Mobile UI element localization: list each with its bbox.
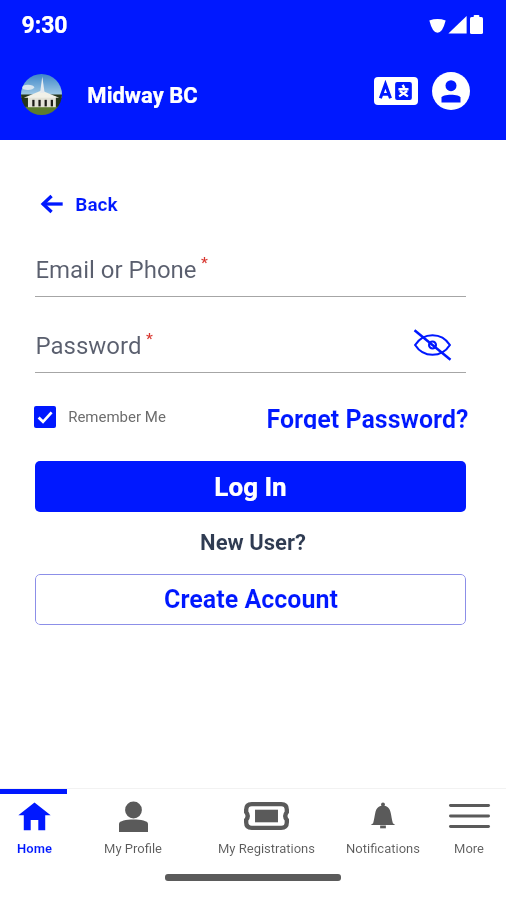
- button[interactable]: My Registrations: [201, 796, 331, 856]
- staticText: My Registrations: [218, 841, 315, 856]
- staticText: *: [142, 330, 153, 348]
- staticText: Home: [17, 841, 52, 856]
- staticText: Remember Me: [68, 408, 166, 426]
- button[interactable]: Forget Password?: [266, 405, 469, 429]
- staticText: Email or Phone: [35, 256, 197, 284]
- staticText: My Profile: [104, 841, 162, 856]
- staticText: Forget Password?: [266, 405, 469, 429]
- staticText: Log In: [214, 472, 287, 502]
- staticText: 9:30: [21, 12, 68, 39]
- staticText: Notifications: [346, 841, 420, 856]
- button[interactable]: Show password: [414, 330, 451, 360]
- button[interactable]: Notifications: [328, 796, 438, 856]
- button[interactable]: Back: [41, 193, 118, 215]
- button[interactable]: Home: [0, 796, 79, 856]
- button[interactable]: Create Account: [35, 574, 466, 625]
- button[interactable]: Account: [432, 72, 470, 110]
- staticText: Password: [35, 332, 142, 360]
- button[interactable]: More: [433, 796, 505, 856]
- button[interactable]: Translate language: [374, 77, 418, 105]
- staticText: Midway BC: [87, 83, 198, 109]
- button[interactable]: My Profile: [88, 796, 178, 856]
- staticText: Back: [75, 193, 118, 215]
- button[interactable]: Log In: [35, 461, 466, 512]
- button[interactable]: Remember Me: [34, 406, 166, 428]
- staticText: *: [197, 254, 208, 272]
- staticText: More: [454, 841, 484, 856]
- staticText: Create Account: [164, 585, 338, 614]
- staticText: New User?: [200, 530, 306, 556]
